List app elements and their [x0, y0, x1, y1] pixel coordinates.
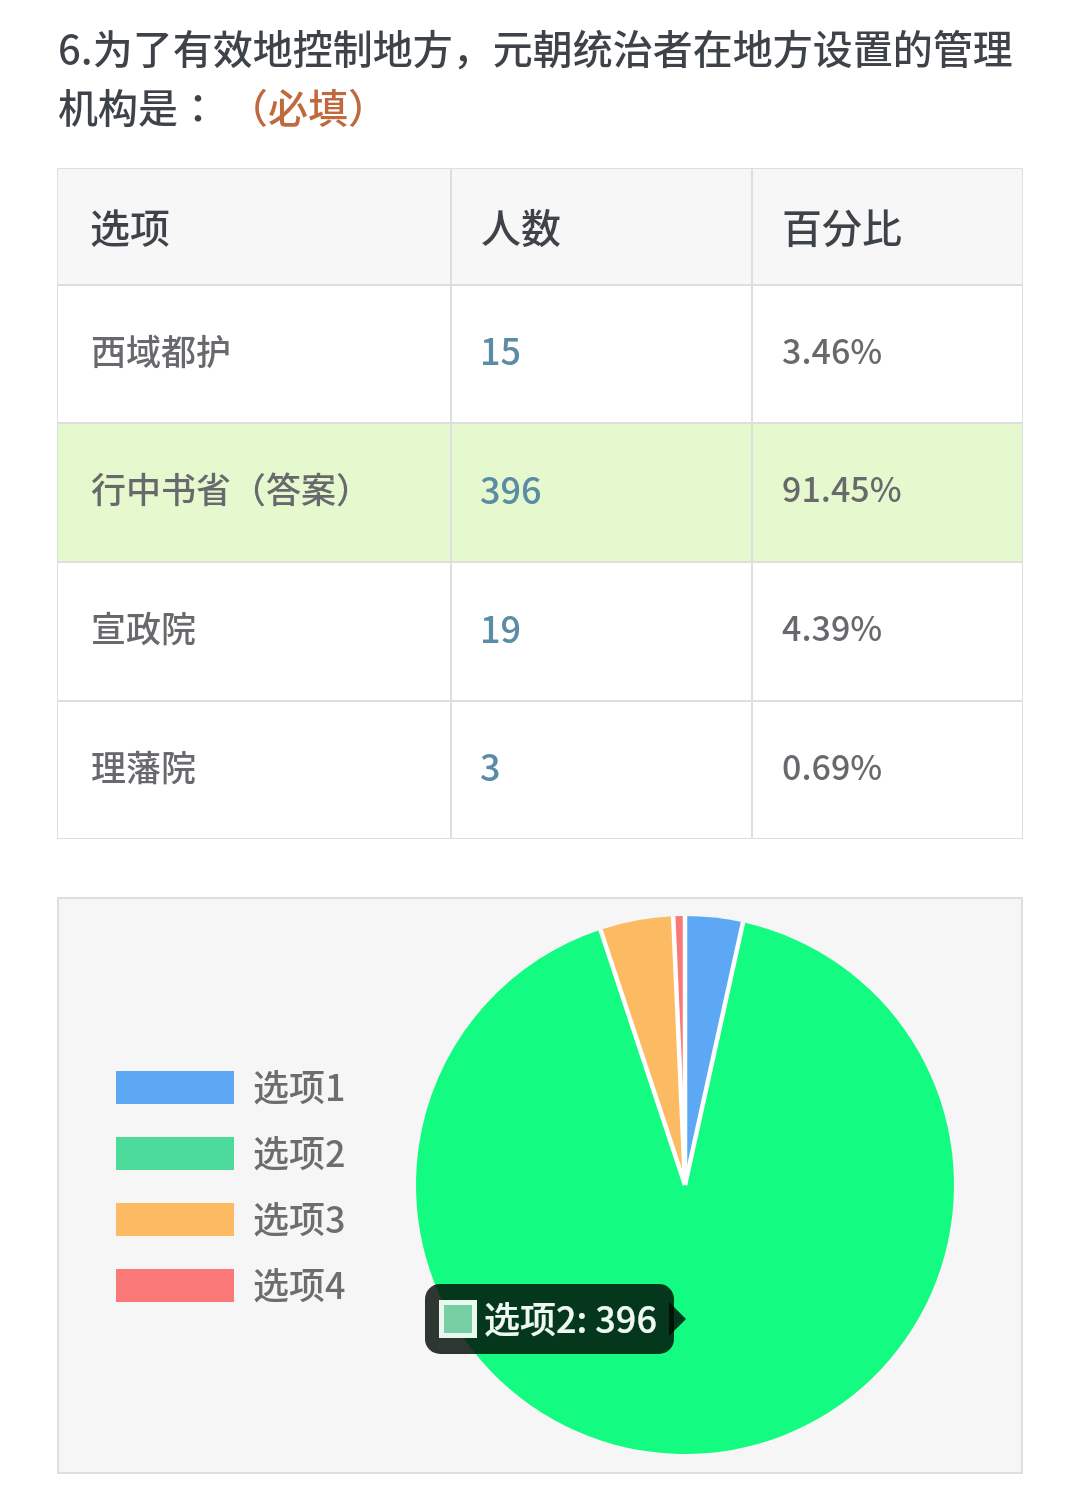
other: Pie chart of answer distribution [58, 898, 1022, 1473]
button[interactable]: 行中书省（答案） [58, 424, 1022, 561]
button[interactable]: 选项2 [116, 1120, 346, 1186]
button[interactable]: 选项2: 396 [425, 1284, 674, 1354]
staticText: 宣政院 [91, 601, 197, 652]
staticText: 选项2: 396 [484, 1291, 657, 1343]
staticText: 机构是： [58, 77, 218, 135]
staticText: 选项3 [253, 1191, 346, 1243]
staticText: 91.45% [782, 463, 902, 512]
staticText: 选项 [90, 197, 170, 255]
staticText: 人数 [481, 197, 561, 255]
staticText: 396 [480, 462, 542, 514]
staticText: 3.46% [782, 325, 883, 374]
staticText: 选项1 [253, 1059, 346, 1111]
staticText: 6.为了有效地控制地方，元朝统治者在地方设置的管理 [58, 18, 1013, 76]
staticText: 选项4 [253, 1257, 346, 1309]
button[interactable]: 选项3 [116, 1186, 346, 1252]
staticText: 西域都护 [91, 324, 232, 375]
button[interactable]: 理藩院 [58, 702, 1022, 838]
staticText: 0.69% [782, 741, 883, 790]
staticText: 选项2 [253, 1125, 346, 1177]
staticText: 行中书省（答案） [91, 462, 372, 513]
staticText: 19 [480, 601, 522, 653]
button[interactable]: 西域都护 [58, 286, 1022, 422]
staticText: （必填） [228, 77, 388, 135]
staticText: 3 [480, 739, 501, 791]
staticText: 百分比 [782, 197, 902, 255]
staticText: 4.39% [782, 602, 883, 651]
button[interactable]: 选项4 [116, 1252, 346, 1318]
staticText: 理藩院 [91, 740, 197, 791]
button[interactable]: 宣政院 [58, 563, 1022, 700]
staticText: 15 [480, 323, 522, 375]
button[interactable]: 选项1 [116, 1054, 346, 1120]
